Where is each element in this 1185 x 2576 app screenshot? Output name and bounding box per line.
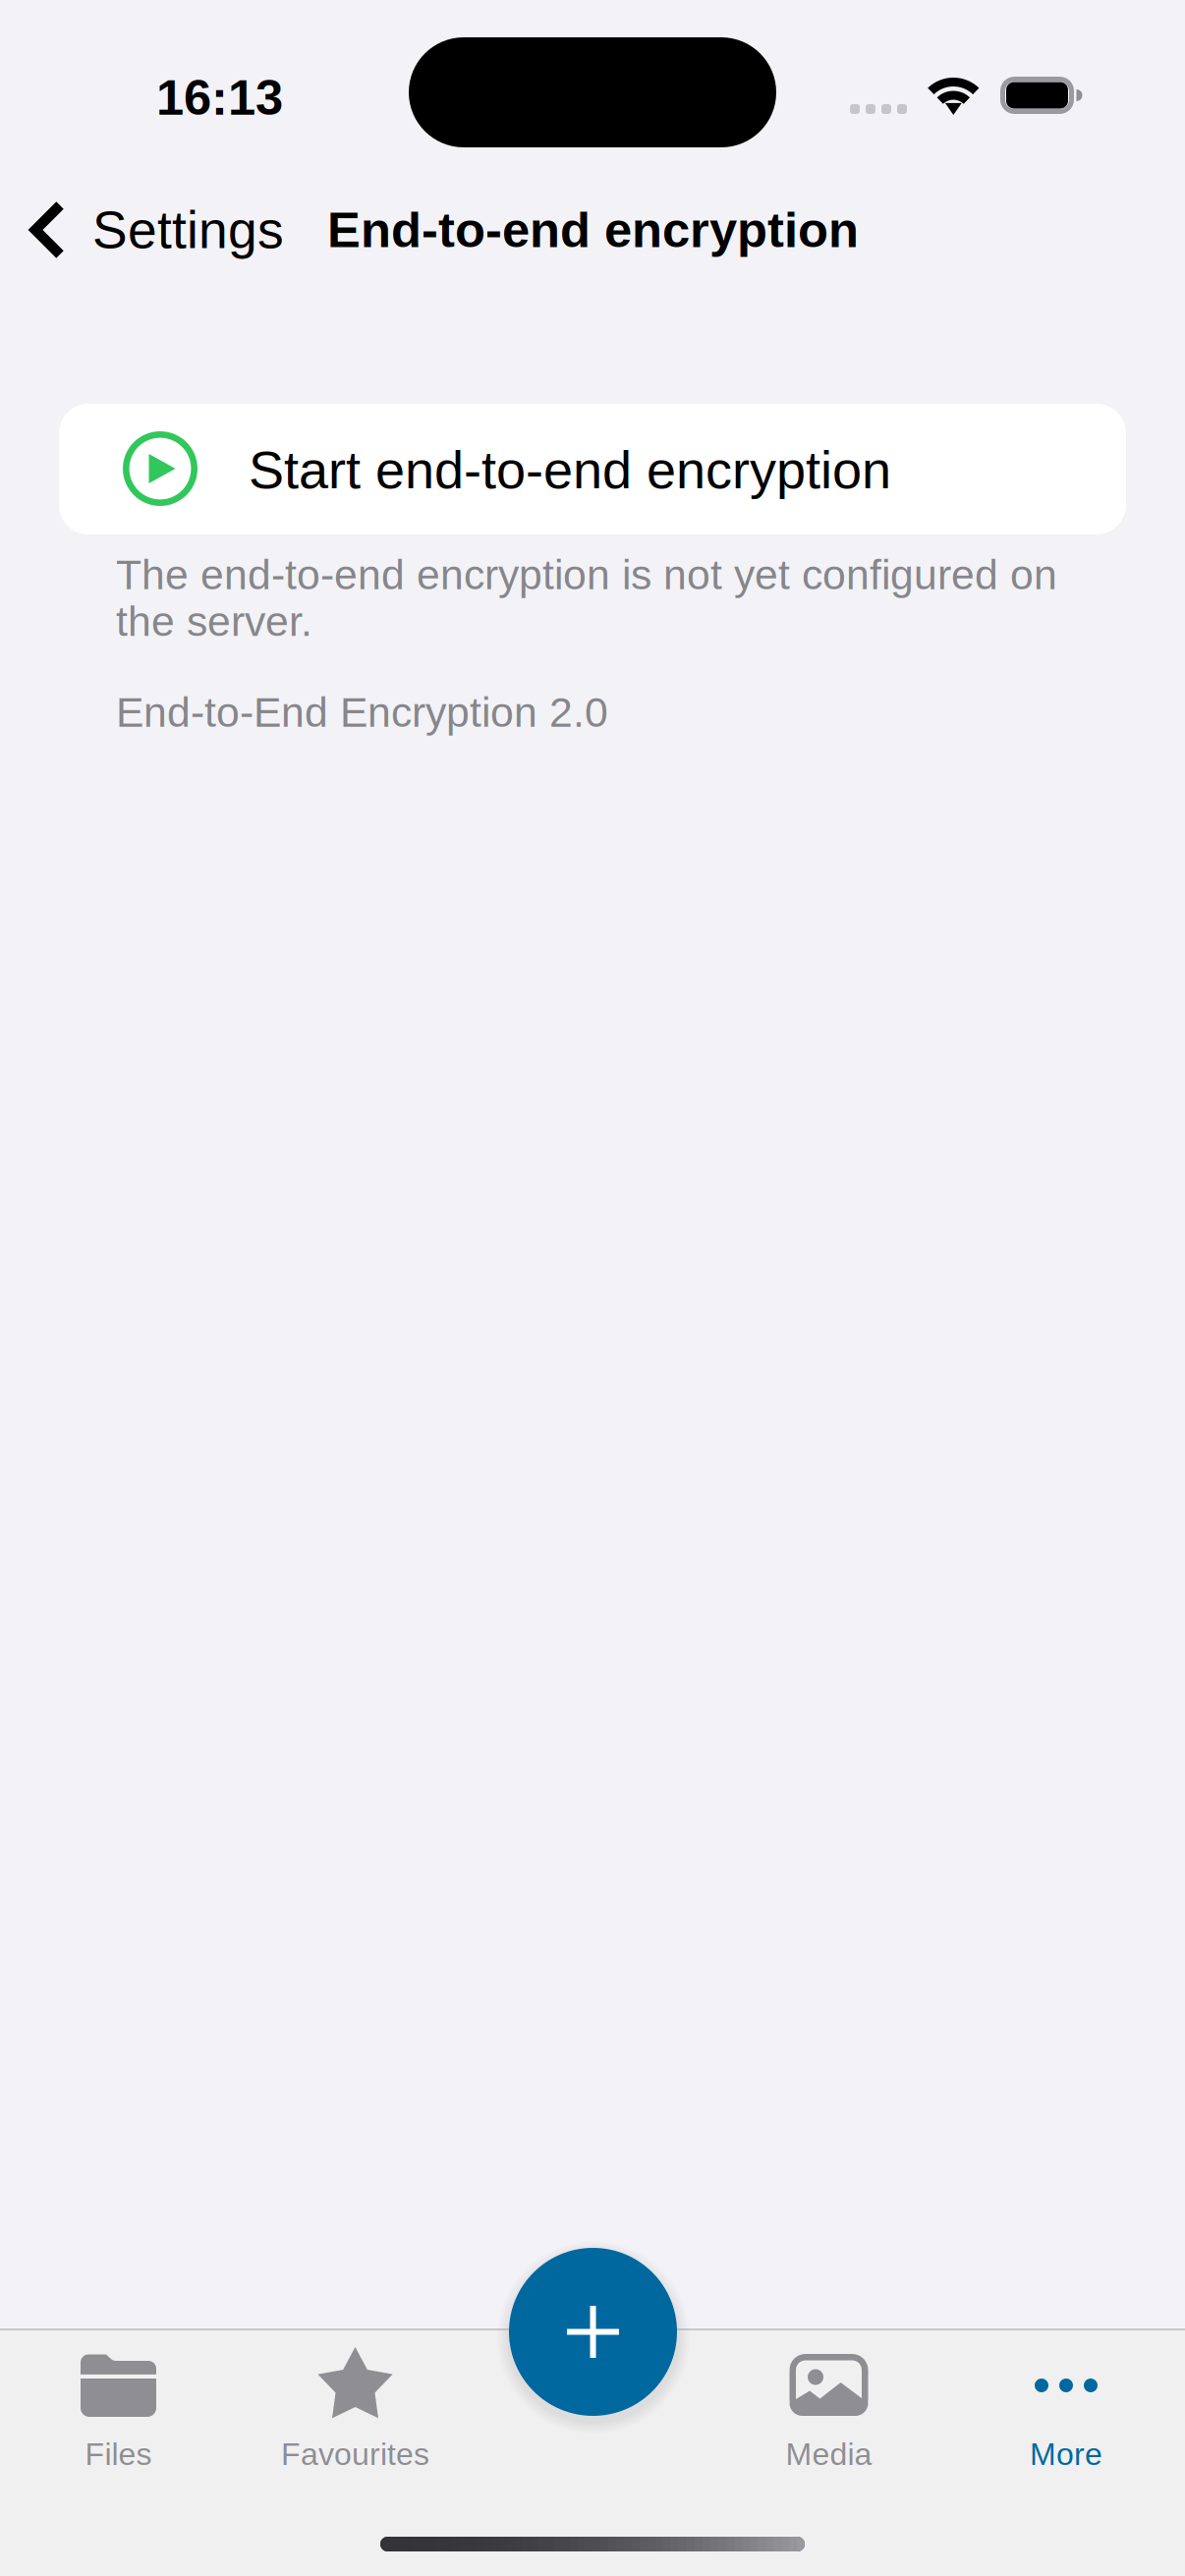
staticText: More <box>1030 2436 1102 2472</box>
button[interactable]: More <box>947 2328 1185 2505</box>
staticText: Files <box>85 2436 152 2472</box>
button[interactable]: Settings <box>0 173 308 287</box>
staticText: The end-to-end encryption is not yet con… <box>116 551 1057 645</box>
button[interactable]: Favourites <box>237 2328 474 2505</box>
staticText: Media <box>786 2436 872 2472</box>
button[interactable]: Files <box>0 2328 237 2505</box>
button[interactable]: End-to-end encryption <box>327 173 859 287</box>
staticText: End-to-end encryption <box>327 202 859 258</box>
staticText: End-to-End Encryption 2.0 <box>116 689 608 736</box>
button[interactable]: Media <box>710 2328 947 2505</box>
staticText: Favourites <box>281 2436 429 2472</box>
staticText: Start end-to-end encryption <box>249 440 891 499</box>
staticText: 16:13 <box>156 70 283 125</box>
staticText: Settings <box>92 201 284 259</box>
button[interactable]: Create <box>509 2248 677 2416</box>
button[interactable]: Start end-to-end encryption <box>59 404 1126 534</box>
